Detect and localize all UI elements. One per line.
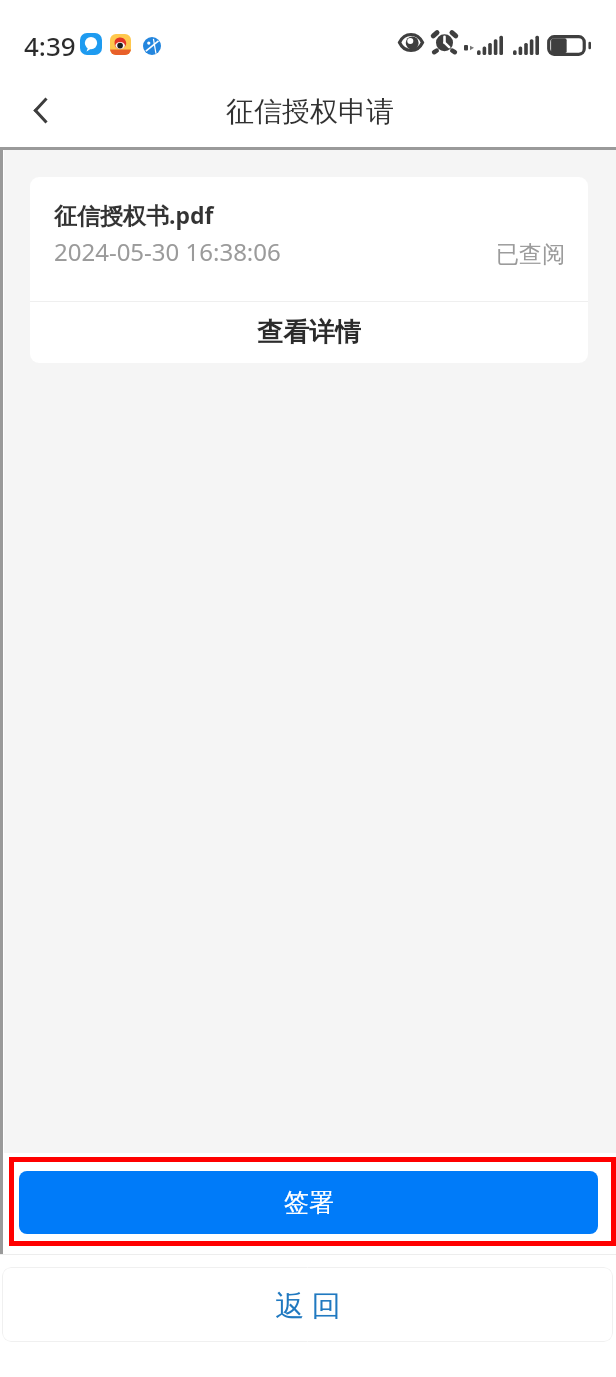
staticText: 已查阅 [496,240,565,269]
button[interactable]: 签署 [19,1171,598,1234]
staticText: 签署 [284,1187,334,1218]
staticText: 返 回 [275,1285,341,1325]
button[interactable]: 返 回 [2,1267,613,1342]
staticText: 征信授权申请 [226,94,394,129]
staticText: 2024-05-30 16:38:06 [54,235,281,268]
staticText: 征信授权书.pdf [54,199,214,230]
staticText: 4:39 [24,28,76,63]
button[interactable]: Back [18,88,62,132]
staticText: 查看详情 [257,316,361,349]
button[interactable]: 征信授权书.pdf [30,177,588,301]
button[interactable]: 查看详情 [30,302,588,363]
